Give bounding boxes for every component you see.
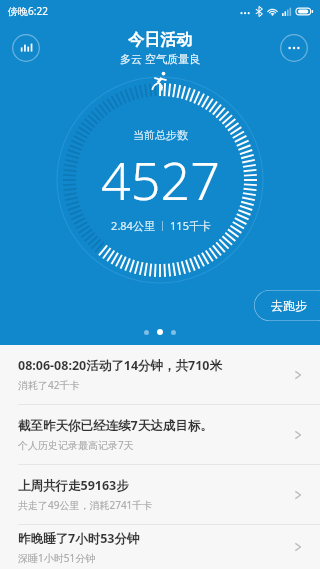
button[interactable]: More options: [280, 34, 308, 62]
staticText: 2.84公里: [111, 218, 155, 233]
staticText: 上周共行走59163步: [18, 477, 129, 494]
button[interactable]: 去跑步: [254, 290, 320, 321]
staticText: 115千卡: [170, 218, 211, 233]
staticText: 截至昨天你已经连续7天达成目标。: [18, 417, 213, 434]
staticText: 傍晚6:22: [8, 4, 48, 18]
button[interactable]: Statistics: [12, 34, 40, 62]
staticText: 共走了49公里，消耗2741千卡: [18, 498, 153, 512]
staticText: 08:06-08:20活动了14分钟，共710米: [18, 357, 222, 374]
staticText: 多云 空气质量良: [120, 51, 200, 66]
staticText: 深睡1小时51分钟: [18, 551, 96, 565]
staticText: 当前总步数: [133, 128, 188, 142]
staticText: 4527: [101, 144, 220, 215]
staticText: 消耗了42千卡: [18, 378, 80, 392]
staticText: 昨晚睡了7小时53分钟: [18, 530, 140, 547]
button[interactable]: 08:06-08:20活动了14分钟，共710米: [0, 345, 320, 404]
button[interactable]: 上周共行走59163步: [0, 465, 320, 524]
staticText: 个人历史记录最高记录7天: [18, 438, 134, 452]
staticText: 去跑步: [271, 298, 307, 313]
staticText: 今日活动: [128, 30, 192, 50]
button[interactable]: 昨晚睡了7小时53分钟: [0, 525, 320, 569]
button[interactable]: 截至昨天你已经连续7天达成目标。: [0, 405, 320, 464]
